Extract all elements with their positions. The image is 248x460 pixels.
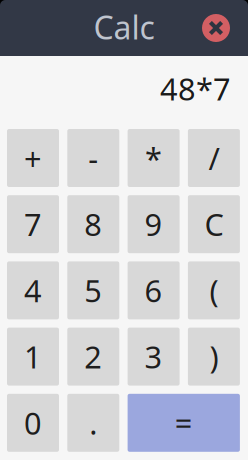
button[interactable]: = (128, 394, 240, 452)
staticText: ) (209, 336, 218, 377)
staticText: 2 (84, 336, 102, 377)
button[interactable]: 6 (128, 261, 180, 319)
button[interactable]: + (7, 129, 59, 187)
staticText: 8 (84, 204, 102, 244)
button[interactable]: / (188, 129, 240, 187)
staticText: 4 (24, 270, 42, 311)
staticText: 6 (145, 270, 163, 311)
staticText: C (204, 204, 223, 244)
button[interactable]: 9 (128, 195, 180, 253)
staticText: = (175, 402, 193, 443)
staticText: 3 (145, 336, 163, 377)
button[interactable]: 3 (128, 328, 180, 386)
button[interactable]: C (188, 195, 240, 253)
button[interactable]: 4 (7, 261, 59, 319)
staticText: Calc (93, 6, 154, 48)
button[interactable]: 8 (67, 195, 119, 253)
staticText: 7 (24, 204, 42, 244)
button[interactable]: ) (188, 328, 240, 386)
staticText: 9 (145, 204, 163, 244)
button[interactable]: 1 (7, 328, 59, 386)
button[interactable]: Close (202, 14, 230, 42)
button[interactable]: * (128, 129, 180, 187)
staticText: * (145, 138, 162, 178)
staticText: 5 (84, 270, 102, 311)
staticText: . (89, 402, 97, 443)
button[interactable]: 0 (7, 394, 59, 452)
staticText: 0 (24, 402, 42, 443)
staticText: + (24, 138, 42, 178)
button[interactable]: 2 (67, 328, 119, 386)
staticText: 48*7 (160, 68, 231, 109)
staticText: 1 (24, 336, 42, 377)
button[interactable]: . (67, 394, 119, 452)
staticText: ( (209, 270, 218, 311)
staticText: / (208, 138, 219, 178)
button[interactable]: 5 (67, 261, 119, 319)
button[interactable]: - (67, 129, 119, 187)
button[interactable]: ( (188, 261, 240, 319)
staticText: - (88, 138, 98, 178)
button[interactable]: 7 (7, 195, 59, 253)
